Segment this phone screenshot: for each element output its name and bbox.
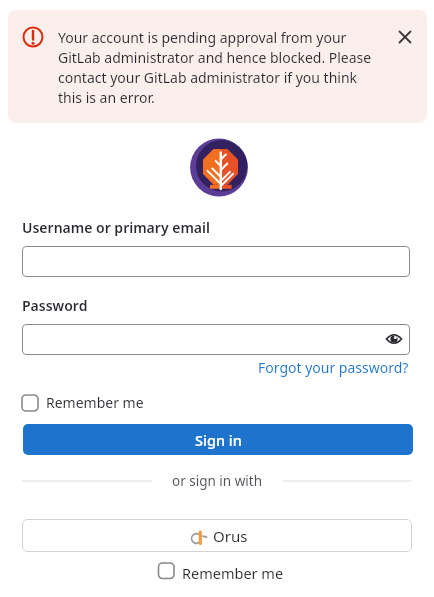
button[interactable] bbox=[22, 246, 410, 277]
button[interactable]: Remember me bbox=[158, 562, 283, 582]
staticText: this is an error. bbox=[58, 88, 155, 107]
staticText: Remember me bbox=[46, 393, 144, 412]
button[interactable]: Orus bbox=[22, 519, 412, 552]
staticText: Sign in bbox=[195, 430, 242, 450]
button[interactable] bbox=[22, 324, 410, 355]
staticText: Orus bbox=[213, 526, 248, 546]
staticText: or sign in with bbox=[172, 472, 263, 490]
staticText: Your account is pending approval from yo… bbox=[58, 28, 347, 47]
button[interactable]: Forgot your password? bbox=[258, 358, 409, 377]
button[interactable]: Remember me bbox=[22, 393, 144, 413]
staticText: Password bbox=[22, 296, 88, 315]
staticText: contact your GitLab administrator if you… bbox=[58, 68, 358, 87]
staticText: Remember me bbox=[182, 563, 284, 583]
staticText: Forgot your password? bbox=[258, 358, 409, 377]
button[interactable]: Sign in bbox=[23, 424, 413, 455]
button[interactable] bbox=[393, 25, 417, 49]
staticText: GitLab administrator and hence blocked. … bbox=[58, 48, 372, 67]
staticText: Username or primary email bbox=[22, 218, 210, 237]
